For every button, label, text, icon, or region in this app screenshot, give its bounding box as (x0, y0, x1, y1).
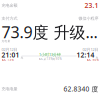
staticText: 充电电量 (1, 86, 17, 91)
staticText: 充 (20, 56, 23, 59)
staticText: 73.9度 升级前 (1, 21, 98, 43)
staticText: 支付方式 (1, 16, 17, 21)
staticText: 02月12日 (1, 47, 17, 52)
staticText: 12:14 (76, 51, 94, 59)
staticText: 21:01 (1, 51, 19, 59)
staticText: 02月12日 (82, 47, 98, 52)
staticText: 1小时13分钟 (39, 52, 61, 57)
staticText: SOC 13% (1, 58, 13, 62)
staticText: 充电量 (1, 39, 10, 43)
staticText: 微信小程序 (78, 16, 98, 21)
staticText: 充电金额 (1, 3, 17, 8)
staticText: 23.1 (84, 1, 98, 10)
staticText: SOC从13%到90% (38, 57, 61, 61)
staticText: 充 (95, 56, 98, 59)
staticText: 62.8340 度 (63, 85, 98, 93)
staticText: SOC 90% (86, 58, 98, 62)
